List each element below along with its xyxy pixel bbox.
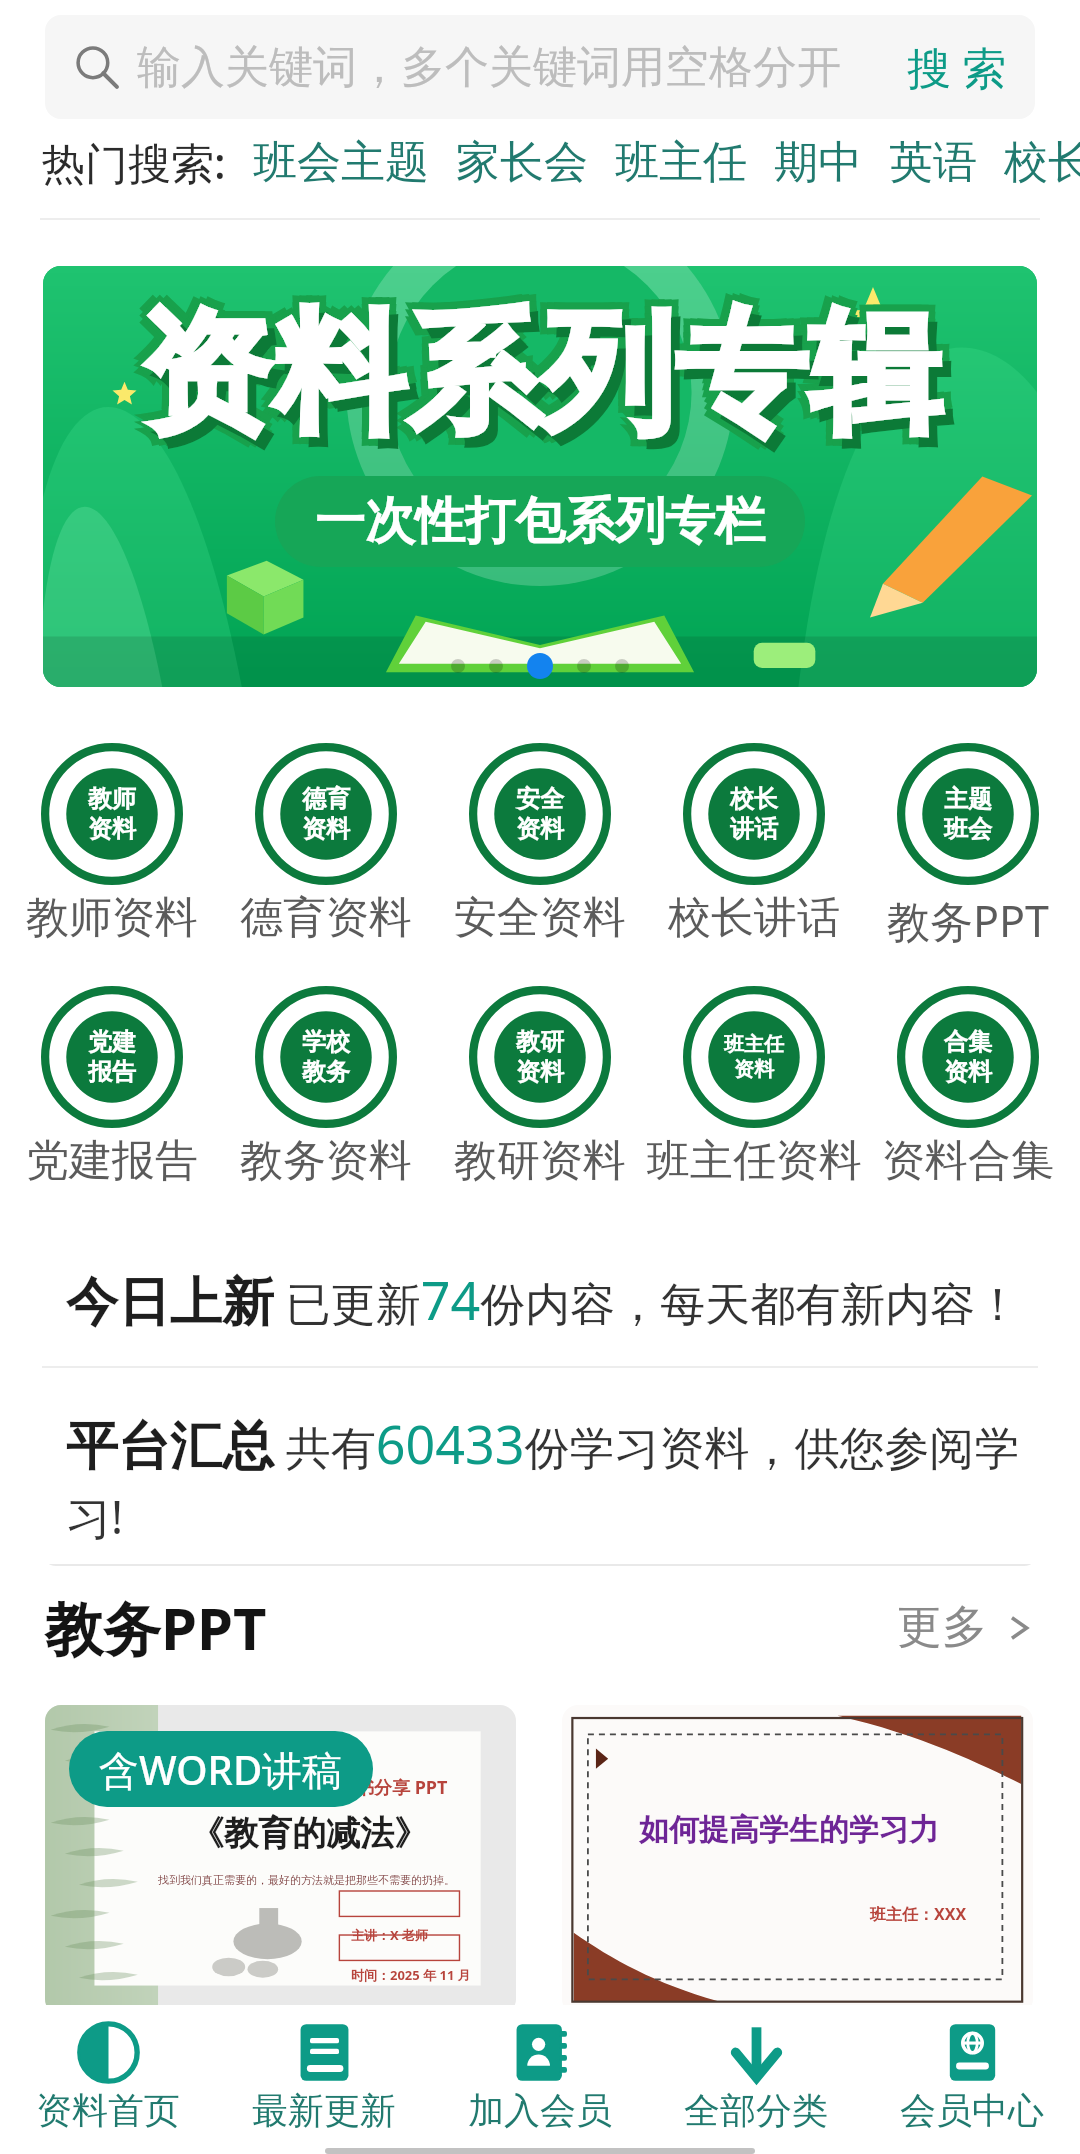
staticText: 资料系列专辑 [147, 302, 951, 468]
staticText: 德育资料 [240, 891, 412, 945]
button[interactable]: 资料系列专辑 [43, 266, 1037, 687]
staticText: 安全资料 [454, 891, 626, 945]
staticText: 资料系列专辑 [138, 285, 942, 451]
staticText: 全部分类 [684, 2088, 828, 2133]
button[interactable]: 如何提高学生的学习力 [562, 1705, 1033, 2015]
staticText: 党建 [88, 1027, 136, 1057]
staticText: 资料 [734, 1057, 774, 1082]
staticText: 报告 [88, 1057, 136, 1087]
button[interactable]: 安全 [433, 743, 647, 945]
staticText: 班会主题 [253, 135, 429, 190]
staticText: 找到我们真正需要的，最好的方法就是把那些不需要的扔掉。 [158, 1873, 455, 1887]
staticText: 党建报告 [26, 1134, 198, 1188]
staticText: 资料系列专辑 [145, 285, 949, 451]
staticText: 教研 [516, 1027, 564, 1057]
staticText: 资料 [944, 1057, 992, 1087]
staticText: 校长 [1004, 135, 1080, 190]
staticText: 教务PPT [45, 1588, 267, 1667]
staticText: 教务 [302, 1057, 350, 1087]
staticText: 学校 [302, 1027, 350, 1057]
button[interactable]: 搜 索 [879, 15, 1035, 119]
staticText: 含WORD讲稿 [99, 1742, 343, 1797]
staticText: 讲话 [730, 814, 778, 844]
button[interactable]: 主题 [861, 743, 1075, 950]
staticText: 输入关键词，多个关键词用空格分开 [137, 40, 841, 95]
button[interactable]: 教研 [433, 986, 647, 1188]
staticText: 资料系列专辑 [138, 299, 942, 465]
button[interactable]: 资料首页 [0, 2005, 216, 2148]
button[interactable]: 全部分类 [648, 2005, 864, 2148]
staticText: 学期读书分享 PPT [302, 1775, 448, 1800]
button[interactable]: 最新更新 [216, 2005, 432, 2148]
button[interactable]: 班主任 [615, 135, 747, 190]
button[interactable]: 校长 [1004, 135, 1080, 190]
button[interactable]: 期中 [774, 135, 862, 190]
button[interactable]: 英语 [889, 135, 977, 190]
button[interactable]: 会员中心 [864, 2005, 1080, 2148]
staticText: 主讲：X 老师 [351, 1926, 429, 1944]
staticText: 加入会员 [468, 2088, 612, 2133]
staticText: 资料 [88, 814, 136, 844]
staticText: 资料系列专辑 [145, 292, 949, 458]
staticText: 校长讲话 [668, 891, 840, 945]
button[interactable]: 加入会员 [432, 2005, 648, 2148]
button[interactable]: Search [45, 15, 1035, 119]
staticText: 《教育的减法》 [190, 1812, 428, 1855]
staticText: 资料系列专辑 [138, 292, 942, 458]
button[interactable]: 更多 [897, 1599, 1035, 1656]
staticText: 教研资料 [454, 1134, 626, 1188]
button[interactable]: 教师 [5, 743, 219, 945]
staticText: 校长 [730, 784, 778, 814]
staticText: 会员中心 [900, 2088, 1044, 2133]
button[interactable]: 家长会 [456, 135, 588, 190]
staticText: 更多 [897, 1599, 987, 1656]
staticText: 主题 [944, 784, 992, 814]
staticText: 资料合集 [882, 1134, 1054, 1188]
button[interactable]: 校长 [647, 743, 861, 945]
staticText: 资料系列专辑 [131, 285, 935, 451]
staticText: 资料系列专辑 [145, 299, 949, 465]
staticText: 资料 [302, 814, 350, 844]
other: Search [69, 41, 121, 93]
staticText: 热门搜索: [42, 133, 226, 192]
button[interactable]: 合集 [861, 986, 1075, 1188]
staticText: 如何提高学生的学习力 [639, 1811, 939, 1849]
staticText: 教务资料 [240, 1134, 412, 1188]
staticText: 班主任资料 [647, 1134, 861, 1188]
staticText: 教师资料 [26, 891, 198, 945]
staticText: 平台汇总 共有60433份学习资料，供您参阅学习! [66, 1408, 1030, 1548]
staticText: 最新更新 [252, 2088, 396, 2133]
button[interactable]: 班会主题 [253, 135, 429, 190]
staticText: 资料系列专辑 [131, 292, 935, 458]
button[interactable]: 党建 [5, 986, 219, 1188]
staticText: 时间：2025 年 11 月 [351, 1966, 471, 1984]
staticText: 资料 [516, 1057, 564, 1087]
staticText: 班会 [944, 814, 992, 844]
staticText: 教务PPT [887, 891, 1049, 950]
staticText: 教师 [88, 784, 136, 814]
button[interactable]: 德育 [219, 743, 433, 945]
staticText: 资料 [516, 814, 564, 844]
staticText: 班主任 [615, 135, 747, 190]
staticText: 安全 [516, 784, 564, 814]
staticText: 一次性打包系列专栏 [315, 490, 765, 553]
other: More [1003, 1612, 1035, 1644]
staticText: 资料首页 [36, 2088, 180, 2133]
button[interactable]: 学校 [219, 986, 433, 1188]
staticText: 家长会 [456, 135, 588, 190]
staticText: 搜 索 [907, 37, 1007, 97]
staticText: 期中 [774, 135, 862, 190]
staticText: 德育 [302, 784, 350, 814]
staticText: 资料系列专辑 [131, 299, 935, 465]
button[interactable]: 班主任 [647, 986, 861, 1188]
staticText: 英语 [889, 135, 977, 190]
staticText: 班主任：XXX [870, 1903, 967, 1925]
staticText: 合集 [944, 1027, 992, 1057]
staticText: 今日上新 已更新74份内容，每天都有新内容！ [66, 1264, 1021, 1335]
staticText: 班主任 [724, 1032, 784, 1057]
button[interactable]: 学期读书分享 PPT [45, 1705, 516, 2015]
